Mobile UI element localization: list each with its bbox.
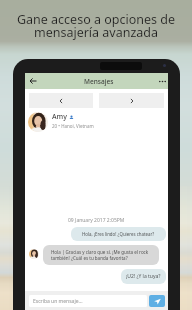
staticText: Mensajes bbox=[84, 77, 114, 86]
button[interactable]: Send bbox=[149, 295, 165, 307]
staticText: 09 January 2017 2:05PM bbox=[68, 217, 125, 224]
button[interactable]: Escriba un mensaje... bbox=[29, 295, 147, 307]
button[interactable]: Amy bbox=[25, 108, 168, 132]
button[interactable]: Back bbox=[25, 73, 168, 89]
button[interactable]: Previous bbox=[29, 93, 93, 108]
staticText: 20 • Hanoi, Vietnam bbox=[52, 123, 94, 129]
button[interactable]: Hola | Gracias y claro que sí. ¡Me gusta… bbox=[43, 245, 159, 265]
button[interactable]: Back bbox=[25, 73, 41, 89]
button[interactable]: Hola, ¡Eres lindo! ¿Quieres chatear? bbox=[71, 227, 166, 241]
staticText: Escriba un mensaje... bbox=[33, 298, 83, 305]
staticText: Hola, ¡Eres lindo! ¿Quieres chatear? bbox=[82, 231, 155, 237]
staticText: ¡U2! ¿Y la tuya? bbox=[126, 273, 161, 280]
staticText: Hola | Gracias y claro que sí. ¡Me gusta… bbox=[51, 249, 151, 261]
button[interactable]: More options bbox=[152, 73, 168, 89]
staticText: Amy bbox=[52, 112, 67, 122]
button[interactable]: Next bbox=[99, 93, 164, 108]
staticText: Gane acceso a opciones de mensajería ava… bbox=[4, 11, 188, 41]
button[interactable]: ¡U2! ¿Y la tuya? bbox=[121, 269, 166, 284]
